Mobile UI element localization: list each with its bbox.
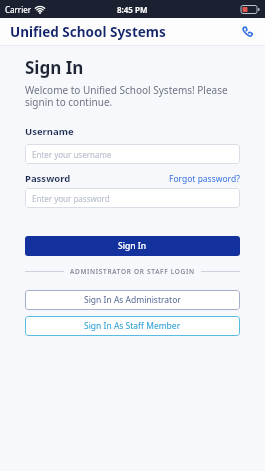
staticText: Enter your username bbox=[32, 149, 112, 160]
staticText: Welcome to Unified School Systems! Pleas… bbox=[25, 83, 228, 109]
staticText: Unified School Systems bbox=[10, 23, 239, 41]
button[interactable] bbox=[239, 24, 255, 40]
staticText: Sign In bbox=[118, 240, 147, 252]
button[interactable]: Enter your username bbox=[25, 144, 240, 164]
staticText: Forgot password? bbox=[169, 173, 240, 185]
staticText: Carrier bbox=[5, 4, 32, 15]
button[interactable]: Forgot password? bbox=[169, 173, 240, 185]
staticText: 8:45 PM bbox=[117, 4, 148, 15]
staticText: Enter your password bbox=[32, 193, 110, 204]
button[interactable]: Enter your password bbox=[25, 188, 240, 208]
staticText: ADMINISTRATOR OR STAFF LOGIN bbox=[70, 267, 195, 276]
staticText: Sign In bbox=[25, 56, 84, 79]
button[interactable]: Sign In As Administrator bbox=[25, 290, 240, 310]
staticText: Sign In As Administrator bbox=[84, 294, 181, 306]
staticText: Sign In As Staff Member bbox=[84, 320, 181, 332]
button[interactable]: Sign In As Staff Member bbox=[25, 316, 240, 336]
staticText: Username bbox=[25, 125, 74, 138]
staticText: Password bbox=[25, 172, 71, 185]
button[interactable]: Sign In bbox=[25, 236, 240, 256]
